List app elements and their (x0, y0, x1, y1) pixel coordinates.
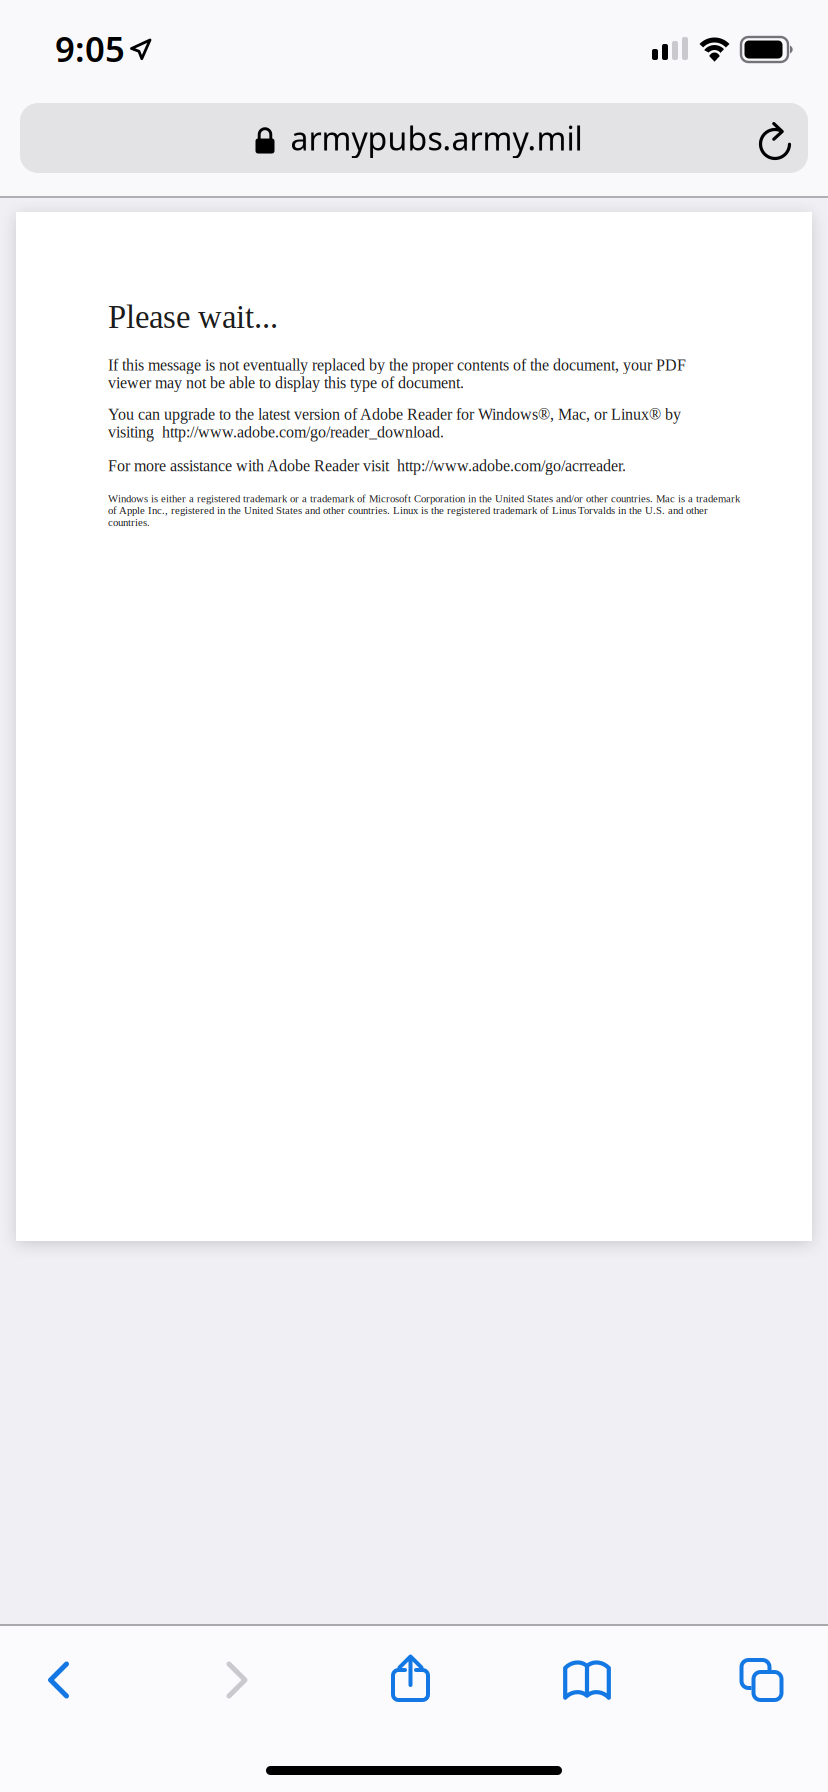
button[interactable]: Back (0, 1632, 116, 1728)
button[interactable]: Reload (734, 103, 800, 173)
staticText: armypubs.army.mil (290, 117, 582, 159)
staticText: 9:05 (55, 25, 125, 71)
button[interactable]: Forward (179, 1632, 295, 1728)
staticText: If this message is not eventually replac… (108, 356, 686, 392)
button[interactable]: Share (352, 1632, 468, 1728)
button[interactable]: Tabs (703, 1632, 819, 1728)
staticText: You can upgrade to the latest version of… (108, 406, 681, 441)
staticText: Windows is either a registered trademark… (108, 493, 740, 528)
staticText: Please wait... (108, 299, 278, 335)
button[interactable]: armypubs.army.mil (20, 103, 808, 173)
staticText: For more assistance with Adobe Reader vi… (108, 457, 626, 475)
button[interactable]: Bookmarks (529, 1632, 645, 1728)
